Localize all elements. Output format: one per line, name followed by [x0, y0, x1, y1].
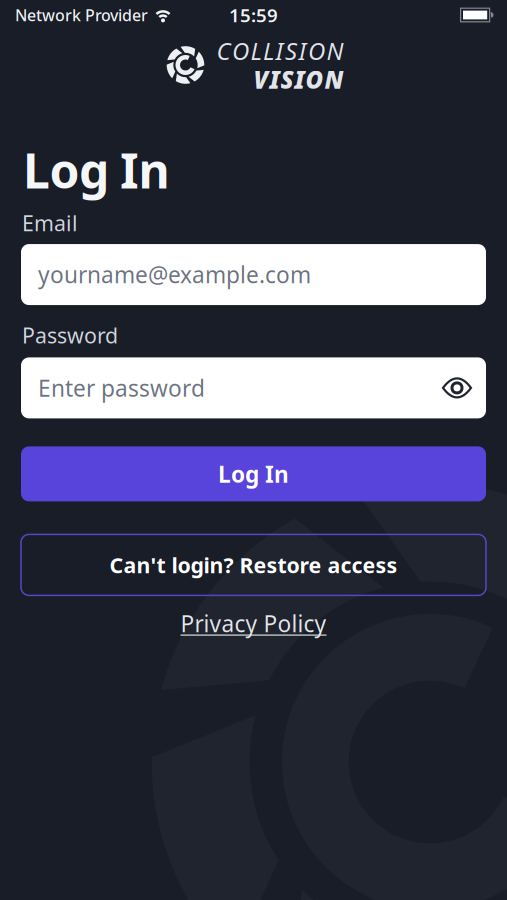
staticText: Network Provider [15, 4, 148, 26]
button[interactable]: Enter password [21, 357, 486, 418]
staticText: Password [22, 321, 118, 349]
button[interactable]: Can't login? Restore access [21, 534, 486, 595]
staticText: Email [22, 209, 78, 237]
staticText: Can't login? Restore access [109, 551, 397, 579]
button[interactable]: Privacy Policy [180, 608, 326, 638]
staticText: yourname@example.com [38, 259, 311, 290]
staticText: Enter password [38, 373, 205, 403]
staticText: COLLISION [216, 35, 343, 66]
staticText: Log In [23, 138, 169, 202]
button[interactable]: yourname@example.com [21, 244, 486, 305]
staticText: VISION [253, 63, 343, 95]
button[interactable]: Log In [21, 446, 486, 501]
staticText: Log In [218, 459, 289, 489]
staticText: 15:59 [229, 3, 278, 27]
staticText: Privacy Policy [180, 608, 326, 638]
